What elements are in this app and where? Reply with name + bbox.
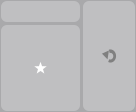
button[interactable]: Favorite <box>1 25 80 111</box>
button[interactable]: Back <box>83 1 135 111</box>
